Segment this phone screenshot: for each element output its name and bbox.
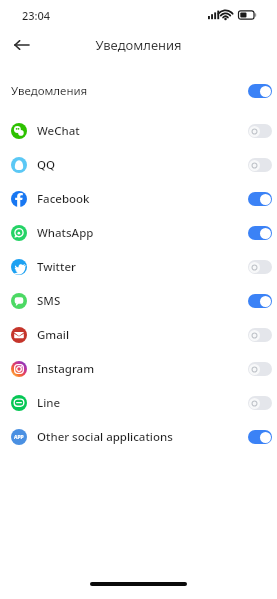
button[interactable]: Instagram notifications — [248, 362, 272, 376]
staticText: Twitter — [37, 259, 76, 275]
button[interactable]: All notifications — [248, 84, 272, 98]
staticText: APP — [14, 434, 24, 441]
staticText: Уведомления — [11, 83, 88, 99]
button[interactable]: Line — [0, 386, 277, 420]
button[interactable]: APP — [0, 420, 277, 454]
button[interactable]: WhatsApp notifications — [248, 226, 272, 240]
button[interactable]: QQ notifications — [248, 158, 272, 172]
button[interactable]: Facebook notifications — [248, 192, 272, 206]
button[interactable]: WeChat — [0, 114, 277, 148]
button[interactable]: WhatsApp — [0, 216, 277, 250]
staticText: WhatsApp — [37, 225, 94, 241]
staticText: QQ — [37, 157, 56, 173]
button[interactable]: Facebook — [0, 182, 277, 216]
button[interactable]: Twitter notifications — [248, 260, 272, 274]
button[interactable]: Twitter — [0, 250, 277, 284]
button[interactable]: Back — [9, 32, 35, 58]
staticText: 23:04 — [22, 8, 51, 23]
staticText: Уведомления — [95, 36, 182, 54]
button[interactable]: Line notifications — [248, 396, 272, 410]
button[interactable]: SMS — [0, 284, 277, 318]
button[interactable]: Instagram — [0, 352, 277, 386]
button[interactable]: Gmail notifications — [248, 328, 272, 342]
staticText: SMS — [37, 293, 61, 309]
staticText: WeChat — [37, 123, 80, 139]
button[interactable]: Other social applications notifications — [248, 430, 272, 444]
button[interactable]: WeChat notifications — [248, 124, 272, 138]
staticText: Gmail — [37, 327, 70, 343]
staticText: Instagram — [37, 361, 95, 377]
staticText: Other social applications — [37, 429, 173, 445]
button[interactable]: SMS notifications — [248, 294, 272, 308]
staticText: Facebook — [37, 191, 90, 207]
staticText: Line — [37, 395, 61, 411]
button[interactable]: Уведомления — [0, 80, 277, 102]
button[interactable]: QQ — [0, 148, 277, 182]
button[interactable]: Gmail — [0, 318, 277, 352]
